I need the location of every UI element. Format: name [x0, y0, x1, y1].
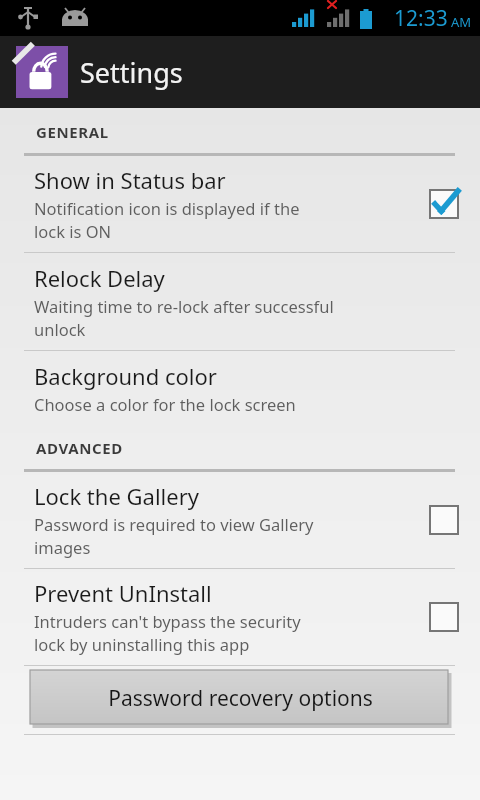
- staticText: Intruders can't bypass the security lock…: [34, 610, 301, 656]
- button[interactable]: Checked: [408, 156, 480, 252]
- other: App icon: [16, 46, 68, 98]
- button[interactable]: Unchecked: [408, 569, 480, 665]
- button[interactable]: Lock the Gallery: [0, 472, 480, 568]
- button[interactable]: Prevent UnInstall: [0, 569, 480, 665]
- staticText: ADVANCED: [36, 438, 123, 458]
- staticText: Notification icon is displayed if the lo…: [34, 197, 300, 243]
- staticText: Waiting time to re-lock after successful…: [34, 295, 334, 341]
- button[interactable]: Show in Status bar: [0, 156, 480, 252]
- button[interactable]: Background color: [0, 351, 480, 424]
- staticText: Relock Delay: [34, 263, 165, 293]
- button[interactable]: Relock Delay: [0, 253, 480, 350]
- staticText: Show in Status bar: [34, 165, 226, 195]
- staticText: Background color: [34, 361, 217, 391]
- staticText: Lock the Gallery: [34, 481, 199, 511]
- staticText: AM: [451, 13, 472, 31]
- button[interactable]: Unchecked: [408, 472, 480, 568]
- staticText: Settings: [80, 54, 183, 91]
- staticText: Prevent UnInstall: [34, 578, 212, 608]
- staticText: GENERAL: [36, 122, 109, 142]
- staticText: Choose a color for the lock screen: [34, 393, 296, 415]
- staticText: 12:33: [394, 4, 448, 33]
- button[interactable]: Password recovery options: [30, 670, 450, 726]
- staticText: Password is required to view Gallery ima…: [34, 513, 314, 559]
- staticText: Password recovery options: [108, 684, 373, 713]
